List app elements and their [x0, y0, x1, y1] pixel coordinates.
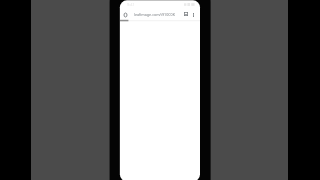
staticText: 9:41: [127, 2, 135, 7]
staticText: leafimage.com/i910C0K: [134, 12, 194, 17]
button[interactable]: Switch tabs: [181, 9, 190, 18]
button[interactable]: More options: [189, 10, 198, 19]
button[interactable]: Search or type web address: [129, 8, 179, 20]
button[interactable]: Site information: [121, 10, 130, 19]
